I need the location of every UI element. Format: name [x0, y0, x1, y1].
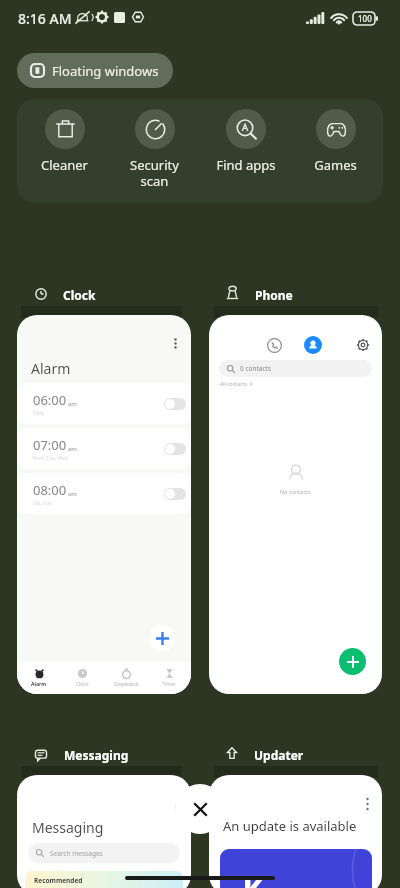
staticText: Alarm: [31, 359, 71, 378]
staticText: All contacts 0: [220, 381, 253, 388]
button[interactable]: 06:00: [17, 383, 191, 424]
button[interactable]: Close all: [175, 784, 225, 834]
button[interactable]: Toggle alarm: [164, 443, 186, 455]
button[interactable]: Toggle alarm: [164, 398, 186, 410]
button[interactable]: 07:00: [17, 428, 191, 469]
staticText: am: [68, 400, 77, 408]
button[interactable]: Games: [293, 99, 378, 203]
staticText: Recommended: [34, 876, 83, 885]
button[interactable]: Contacts: [304, 336, 322, 354]
button[interactable]: Floating windows: [17, 53, 173, 88]
button[interactable]: Alarm: [18, 668, 60, 688]
staticText: No contacts: [280, 488, 311, 495]
staticText: Messaging: [32, 818, 104, 837]
staticText: Updater: [254, 747, 304, 763]
button[interactable]: Recents: [209, 315, 382, 694]
staticText: 06:00: [33, 391, 67, 409]
staticText: 08:00: [33, 481, 67, 499]
staticText: am: [68, 445, 77, 453]
staticText: Floating windows: [52, 62, 159, 80]
staticText: Alarm: [31, 681, 47, 688]
staticText: am: [68, 490, 77, 498]
button[interactable]: Search messages: [28, 843, 180, 863]
staticText: Messaging: [64, 747, 129, 763]
staticText: Clock: [63, 287, 96, 303]
button[interactable]: Messaging: [17, 775, 191, 888]
staticText: K: [242, 865, 265, 888]
button[interactable]: Add contact: [339, 648, 366, 675]
button[interactable]: 08:00: [17, 473, 191, 514]
staticText: 0 contacts: [240, 364, 272, 373]
button[interactable]: Alarm: [17, 315, 191, 694]
staticText: Daily: [33, 410, 45, 417]
button[interactable]: Recents: [264, 335, 284, 355]
button[interactable]: Toggle alarm: [164, 488, 186, 500]
button[interactable]: Clock: [61, 668, 103, 688]
staticText: Stopwatch: [114, 681, 139, 688]
button[interactable]: An update is available: [209, 775, 382, 888]
staticText: Search messages: [50, 849, 103, 858]
button[interactable]: Find apps: [203, 99, 288, 203]
staticText: 100: [358, 13, 372, 24]
button[interactable]: 0 contacts: [219, 360, 372, 377]
button[interactable]: Add alarm: [149, 625, 175, 651]
staticText: Mon, Tue, Wed: [33, 455, 68, 462]
button[interactable]: Security scan: [112, 99, 197, 203]
staticText: Cleaner: [41, 156, 88, 174]
staticText: Find apps: [216, 156, 276, 174]
staticText: Timer: [162, 681, 176, 688]
staticText: Phone: [255, 287, 293, 303]
staticText: 8:16 AM: [18, 9, 72, 28]
button[interactable]: Cleaner: [22, 99, 107, 203]
staticText: 07:00: [33, 436, 67, 454]
button[interactable]: Settings: [353, 335, 373, 355]
staticText: Security scan: [130, 156, 179, 189]
button[interactable]: Timer: [148, 668, 190, 688]
staticText: Sat, Sun: [33, 500, 52, 507]
button[interactable]: Stopwatch: [105, 668, 147, 688]
staticText: An update is available: [223, 817, 357, 835]
staticText: Games: [314, 156, 357, 174]
staticText: Clock: [76, 681, 89, 688]
